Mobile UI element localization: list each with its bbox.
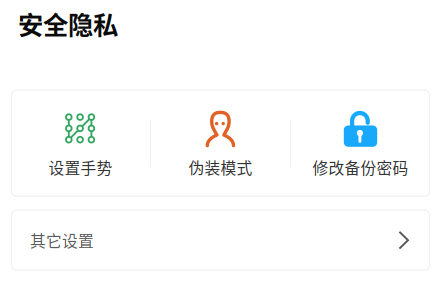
staticText: 其它设置: [30, 229, 94, 252]
staticText: 修改备份密码: [312, 156, 408, 179]
button[interactable]: 其它设置: [11, 210, 430, 271]
button[interactable]: 设置手势: [11, 91, 150, 196]
button[interactable]: 修改备份密码: [291, 91, 430, 196]
button[interactable]: 伪装模式: [151, 91, 290, 196]
staticText: 伪装模式: [188, 156, 252, 179]
staticText: 安全隐私: [18, 5, 118, 42]
staticText: 设置手势: [48, 156, 112, 179]
